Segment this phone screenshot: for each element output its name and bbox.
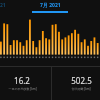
staticText: 7月 2021 — [40, 2, 61, 9]
button[interactable]: 6月 2021 — [0, 2, 6, 9]
staticText: 6月 2021 — [0, 2, 6, 9]
button[interactable]: 502.5 — [59, 66, 100, 100]
staticText: 502.5 — [71, 75, 92, 86]
staticText: 16.2 — [14, 75, 30, 86]
staticText: 合計距離 [km] — [71, 87, 91, 91]
staticText: 一日の平均歩数 [km] — [8, 87, 37, 91]
button[interactable]: 7月 2021 — [32, 2, 68, 13]
button[interactable]: 16.2 — [0, 66, 44, 100]
